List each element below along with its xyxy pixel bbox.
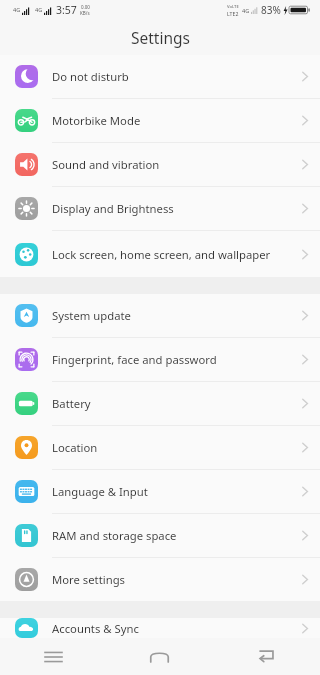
staticText: Language & Input (52, 484, 295, 499)
staticText: KB/s (80, 10, 90, 16)
staticText: Motorbike Mode (52, 113, 295, 128)
staticText: Sound and vibration (52, 157, 295, 172)
staticText: Settings (131, 27, 190, 48)
button[interactable]: Location (0, 426, 320, 469)
button[interactable]: Lock screen, home screen, and wallpaper (0, 231, 320, 277)
staticText: More settings (52, 572, 295, 587)
staticText: Accounts & Sync (52, 621, 295, 636)
staticText: RAM and storage space (52, 528, 295, 543)
button[interactable]: Recent apps (0, 638, 106, 675)
button[interactable]: Home (106, 638, 213, 675)
staticText: LTE2 (227, 10, 239, 17)
staticText: 4G (242, 7, 250, 14)
button[interactable]: Back (213, 638, 320, 675)
staticText: System update (52, 308, 295, 323)
staticText: VoLTE (227, 4, 239, 10)
staticText: Do not disturb (52, 69, 295, 84)
button[interactable]: Accounts & Sync (0, 618, 320, 638)
button[interactable]: Display and Brightness (0, 187, 320, 230)
button[interactable]: Sound and vibration (0, 143, 320, 186)
staticText: 4G (35, 6, 43, 13)
staticText: 0.00 (81, 4, 90, 10)
button[interactable]: System update (0, 294, 320, 337)
button[interactable]: Motorbike Mode (0, 99, 320, 142)
button[interactable]: Language & Input (0, 470, 320, 513)
staticText: Battery (52, 396, 295, 411)
staticText: Location (52, 440, 295, 455)
button[interactable]: RAM and storage space (0, 514, 320, 557)
staticText: 3:57 (56, 3, 77, 17)
staticText: 4G (13, 6, 21, 13)
staticText: 83% (261, 3, 281, 17)
staticText: Lock screen, home screen, and wallpaper (52, 247, 295, 262)
button[interactable]: Fingerprint, face and password (0, 338, 320, 381)
staticText: Display and Brightness (52, 201, 295, 216)
staticText: Fingerprint, face and password (52, 352, 295, 367)
button[interactable]: Battery (0, 382, 320, 425)
button[interactable]: Do not disturb (0, 55, 320, 98)
button[interactable]: More settings (0, 558, 320, 601)
